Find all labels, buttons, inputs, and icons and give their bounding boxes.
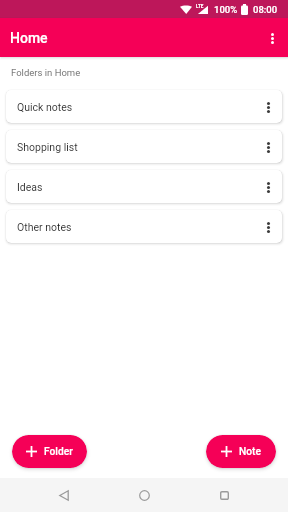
button[interactable]: Folder (12, 435, 87, 468)
staticText: Quick notes (17, 101, 254, 113)
staticText: Folders in Home (11, 67, 81, 78)
button[interactable]: Home (124, 478, 164, 512)
button[interactable]: Back (44, 478, 84, 512)
button[interactable]: Shopping list (6, 130, 282, 163)
staticText: Home (10, 30, 48, 46)
staticText: Note (239, 446, 261, 458)
staticText: 100% (214, 4, 238, 15)
staticText: Shopping list (17, 141, 254, 153)
button[interactable]: More options for Quick notes (254, 93, 282, 121)
staticText: Other notes (17, 221, 254, 233)
button[interactable]: More options for Ideas (254, 173, 282, 201)
staticText: 08:00 (253, 4, 278, 15)
staticText: LTE (196, 4, 204, 9)
button[interactable]: Ideas (6, 170, 282, 203)
button[interactable]: Other notes (6, 210, 282, 243)
button[interactable]: Note (206, 435, 276, 468)
button[interactable]: Recent apps (204, 478, 244, 512)
button[interactable]: More options (257, 19, 288, 57)
staticText: Folder (44, 446, 73, 458)
button[interactable]: More options for Shopping list (254, 133, 282, 161)
button[interactable]: More options for Other notes (254, 213, 282, 241)
button[interactable]: Quick notes (6, 90, 282, 123)
staticText: Ideas (17, 181, 254, 193)
